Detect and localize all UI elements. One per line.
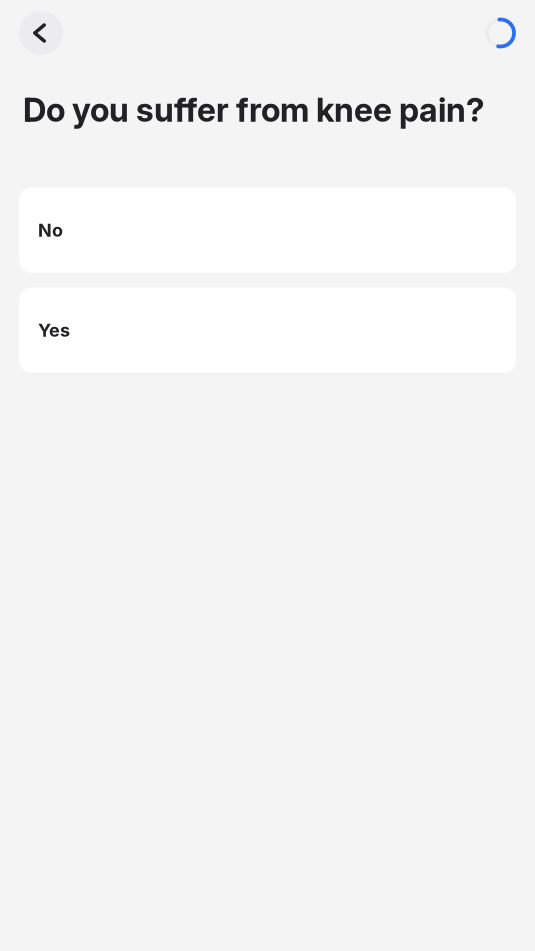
- button[interactable]: No: [19, 188, 516, 273]
- button[interactable]: Back: [19, 11, 63, 55]
- staticText: Yes: [38, 319, 70, 341]
- button[interactable]: Yes: [19, 288, 516, 373]
- staticText: No: [38, 219, 63, 241]
- staticText: Do you suffer from knee pain?: [23, 90, 484, 130]
